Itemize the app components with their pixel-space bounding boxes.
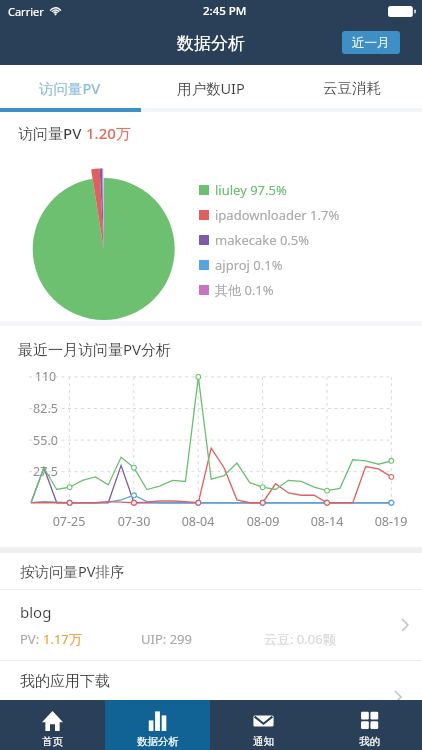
button[interactable]: 访问量PV (0, 65, 140, 108)
staticText: 最近一月访问量PV分析 (18, 339, 172, 359)
staticText: ipadownloader 1.7% (215, 206, 340, 224)
button[interactable]: 我的应用下载 (0, 661, 422, 699)
staticText: 82.5 (15, 400, 76, 417)
button[interactable]: 首页 (0, 700, 105, 750)
button[interactable]: 云豆消耗 (281, 65, 422, 108)
button[interactable]: 通知 (210, 700, 316, 750)
button[interactable]: blog (0, 590, 422, 660)
staticText: 08-19 (366, 513, 416, 530)
staticText: ajproj 0.1% (215, 256, 283, 274)
staticText: liuley 97.5% (215, 181, 287, 199)
staticText: 08-14 (302, 513, 352, 530)
staticText: 1.20万 (86, 123, 131, 143)
staticText: 我的应用下载 (20, 672, 110, 691)
staticText: 通知 (253, 735, 274, 748)
staticText: 110 (15, 368, 76, 385)
staticText: 08-04 (173, 513, 223, 530)
staticText: 2:45 PM (203, 3, 247, 19)
staticText: 其他 0.1% (215, 281, 274, 299)
staticText: makecake 0.5% (215, 231, 310, 249)
staticText: 07-25 (44, 513, 94, 530)
staticText: 1.17万 (43, 630, 82, 648)
staticText: 07-30 (109, 513, 159, 530)
staticText: 我的 (359, 735, 380, 748)
staticText: 按访问量PV排序 (20, 561, 125, 581)
button[interactable]: 按访问量PV排序 (0, 553, 422, 589)
staticText: 首页 (42, 735, 63, 748)
staticText: 27.5 (15, 463, 76, 480)
staticText: 数据分析 (137, 735, 179, 748)
button[interactable]: 用户数UIP (140, 65, 281, 108)
button[interactable]: 数据分析 (105, 700, 210, 750)
staticText: 55.0 (15, 432, 76, 449)
staticText: Carrier (8, 4, 44, 19)
staticText: 近一月 (352, 35, 390, 51)
button[interactable]: 我的 (316, 700, 422, 750)
button[interactable]: 近一月 (342, 31, 400, 54)
staticText: UIP: 299 (141, 630, 192, 648)
staticText: 云豆消耗 (323, 79, 381, 97)
staticText: blog (20, 602, 52, 622)
staticText: 访问量PV (39, 78, 101, 98)
staticText: 数据分析 (177, 33, 245, 54)
staticText: 08-09 (238, 513, 288, 530)
staticText: 用户数UIP (177, 78, 245, 98)
staticText: 云豆: 0.06颗 (264, 630, 336, 648)
staticText: 访问量PV (18, 123, 86, 143)
staticText: PV: (20, 630, 43, 648)
